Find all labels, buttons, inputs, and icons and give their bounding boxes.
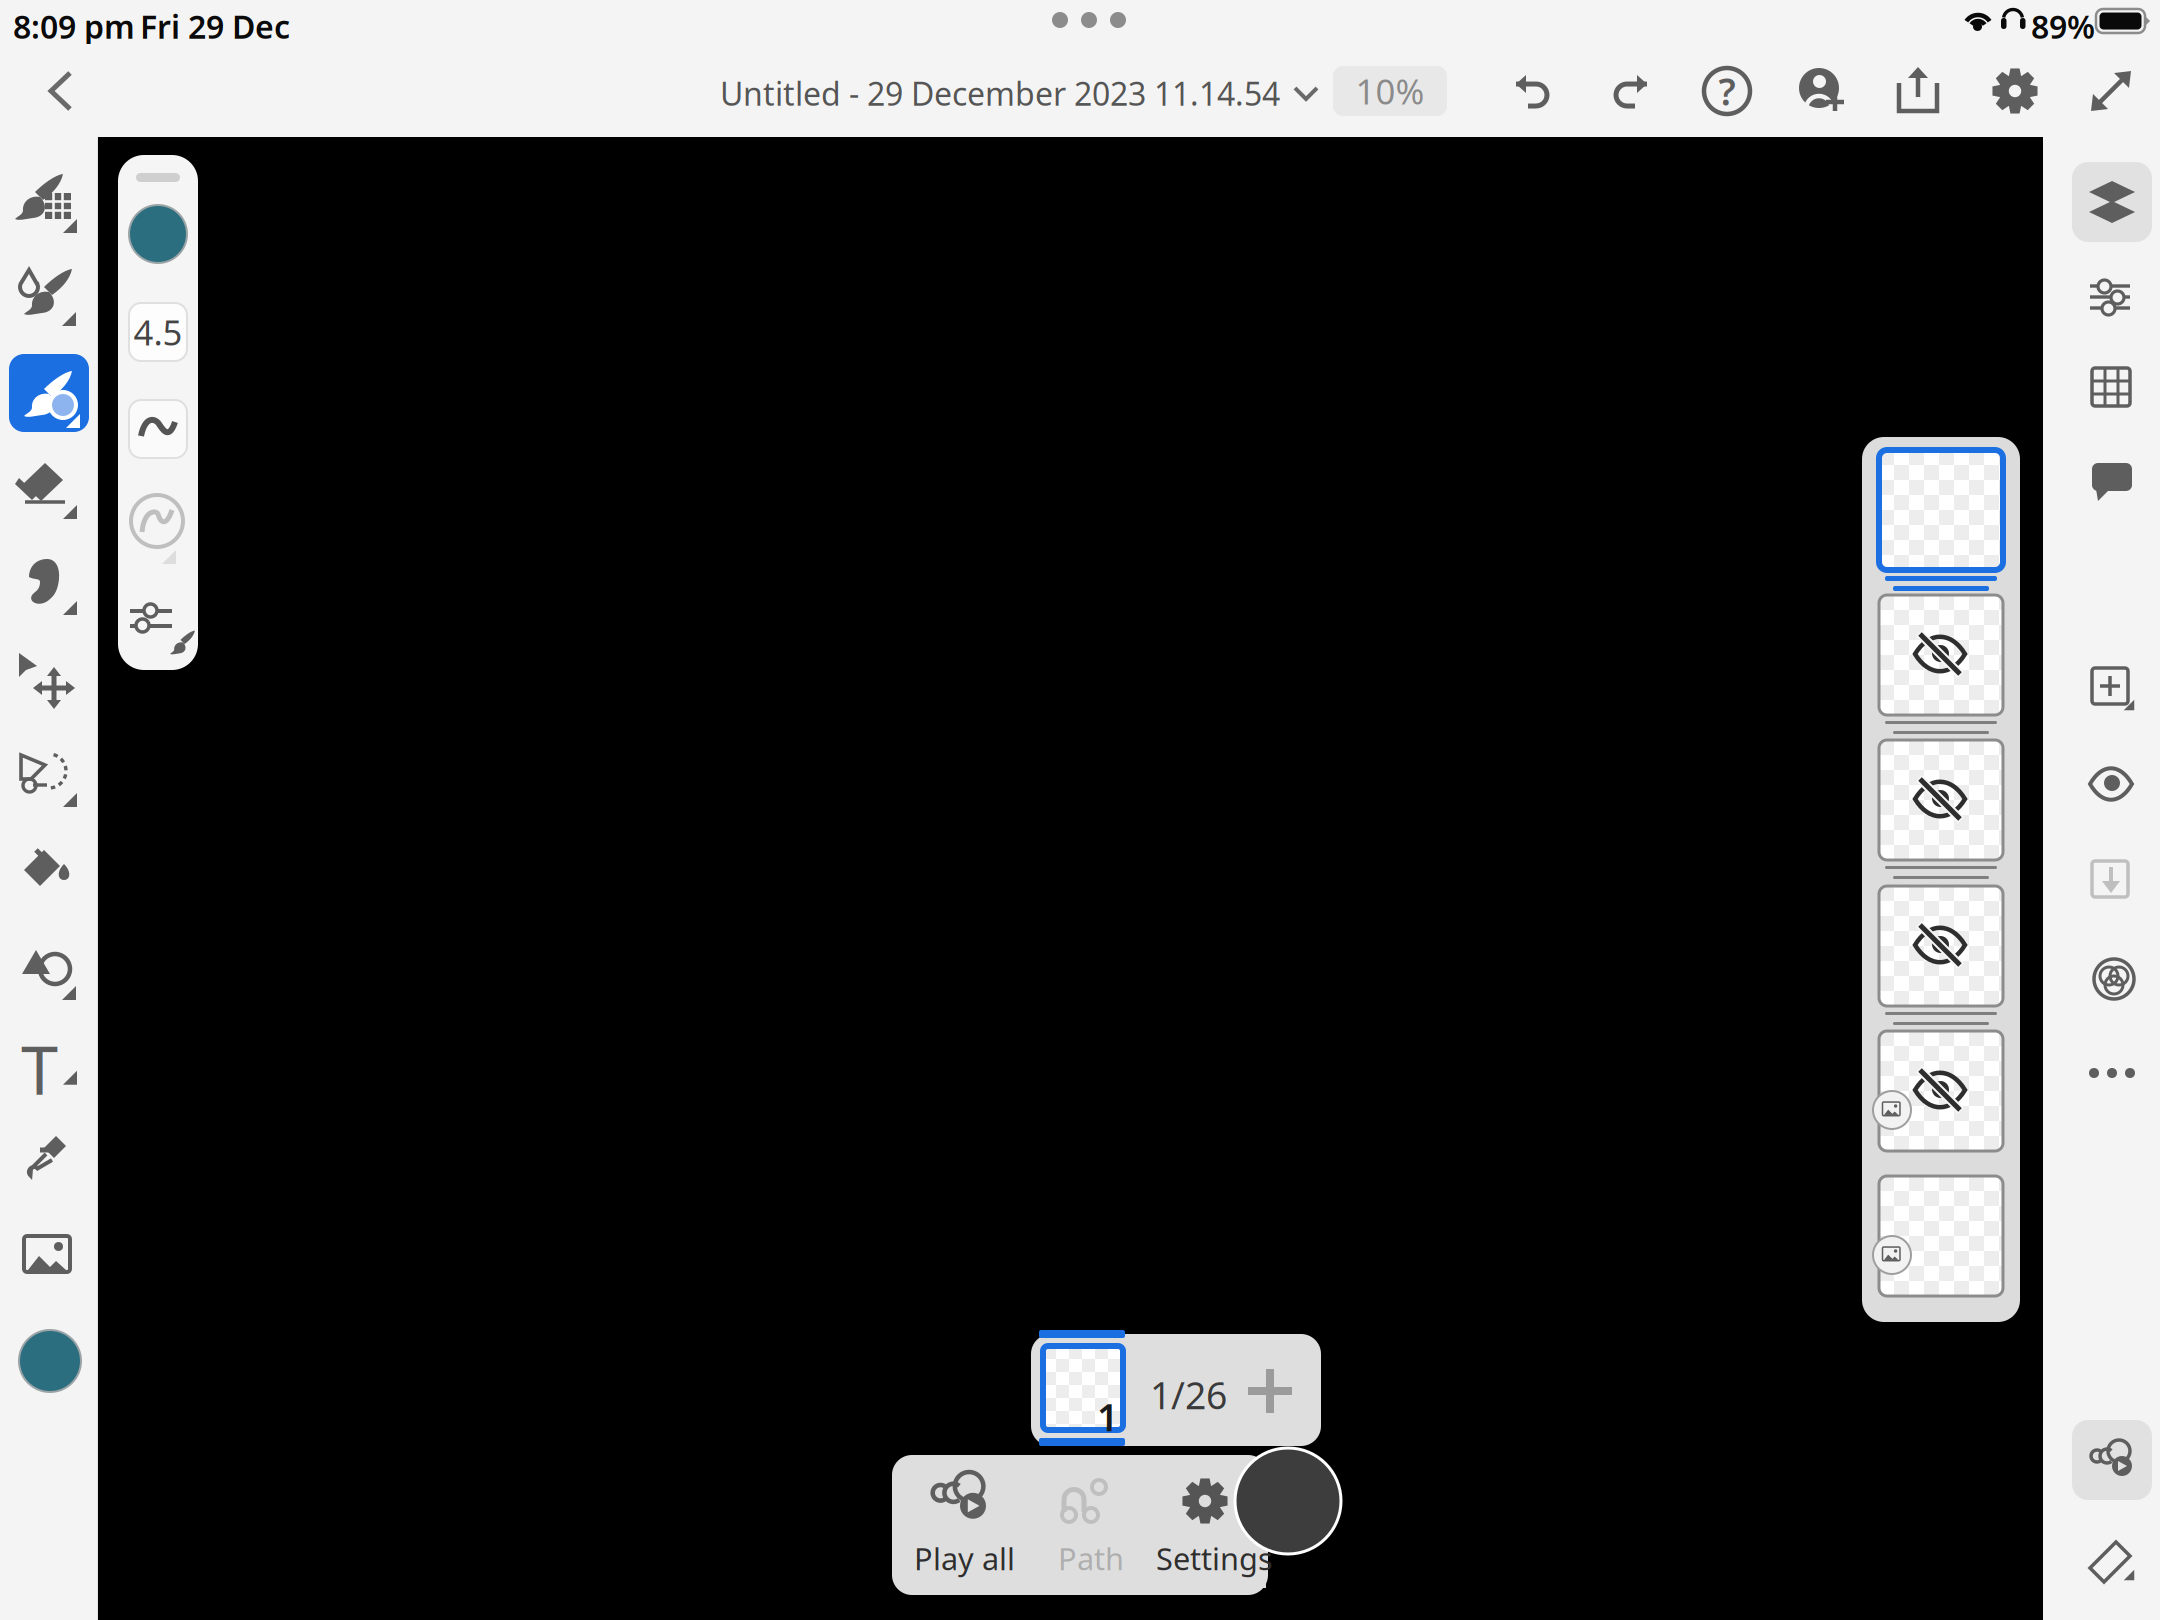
button[interactable]: Colour	[19, 1330, 81, 1392]
staticText: 8:09 pm	[13, 5, 135, 47]
button[interactable]: Ruler	[2072, 1518, 2152, 1598]
staticText: ?	[1718, 66, 1735, 116]
button[interactable]: Place image	[9, 1218, 89, 1296]
button[interactable]: Back	[28, 58, 94, 124]
staticText: 10%	[1355, 68, 1424, 114]
button[interactable]: Adjustments	[2072, 257, 2152, 337]
button[interactable]: Share	[1886, 60, 1952, 122]
button[interactable]: Layer	[1877, 1031, 2005, 1174]
button[interactable]: Pixel brush	[9, 166, 89, 244]
staticText: Play all	[914, 1538, 1015, 1579]
button[interactable]: Settings	[1982, 60, 2048, 122]
button[interactable]: Redo	[1597, 60, 1663, 122]
button[interactable]: Frame 1	[1043, 1346, 1123, 1430]
button[interactable]: Shape	[9, 932, 89, 1010]
staticText: 1	[1097, 1392, 1118, 1442]
button[interactable]: Live brush	[9, 354, 89, 432]
button[interactable]: Add frame	[1243, 1364, 1297, 1418]
button[interactable]: Smudge	[9, 548, 89, 626]
button[interactable]: Path	[1026, 1460, 1144, 1588]
staticText: Fri 29 Dec	[140, 5, 290, 47]
button[interactable]: Settings	[1144, 1460, 1266, 1588]
button[interactable]: Help	[1694, 60, 1760, 122]
staticText: Path	[1058, 1538, 1124, 1579]
staticText: Settings	[1156, 1538, 1273, 1579]
button[interactable]: Brush size 4.5	[129, 303, 187, 361]
button[interactable]: Text	[9, 1028, 89, 1106]
staticText: 1/26	[1150, 1370, 1227, 1420]
button[interactable]: Comments	[2072, 441, 2152, 521]
button[interactable]: Invite	[1790, 60, 1856, 122]
button[interactable]: Water brush	[9, 258, 89, 336]
button[interactable]: Select	[9, 740, 89, 818]
button[interactable]: Play all	[900, 1460, 1026, 1588]
button[interactable]: Blend mode	[2072, 937, 2152, 1017]
button[interactable]: Fill	[9, 836, 89, 914]
button[interactable]: Brush settings	[128, 600, 2160, 1620]
button[interactable]: Brush colour	[129, 205, 187, 263]
button[interactable]: Layer	[1877, 886, 2005, 1029]
button[interactable]: Animation	[2072, 1420, 2152, 1500]
button[interactable]: Layer	[1877, 450, 2005, 593]
staticText: 89%	[2031, 5, 2095, 47]
button[interactable]: Merge down	[2072, 841, 2152, 921]
button[interactable]: Layer	[1877, 740, 2005, 883]
button[interactable]: Layer	[1877, 1176, 2005, 1319]
staticText: 4.5	[133, 309, 182, 355]
button[interactable]: Full screen	[2078, 60, 2144, 122]
staticText: Untitled - 29 December 2023 11.14.54	[720, 72, 1280, 114]
button[interactable]: Record	[1235, 1448, 1341, 1554]
button[interactable]: Untitled - 29 December 2023 11.14.54	[720, 62, 1330, 118]
button[interactable]: Layer	[1877, 595, 2005, 738]
button[interactable]: Brush smoothing	[129, 400, 187, 458]
button[interactable]: Visibility	[2072, 745, 2152, 825]
button[interactable]: Layers	[2072, 162, 2152, 242]
button[interactable]: Grid	[2072, 348, 2152, 428]
button[interactable]: Transform	[9, 644, 89, 722]
button[interactable]: Eyedropper	[9, 1122, 89, 1200]
button[interactable]: Undo	[1500, 60, 1566, 122]
button[interactable]: Eraser	[9, 452, 89, 530]
button[interactable]: Add layer	[2072, 648, 2152, 728]
button[interactable]: More	[2072, 1033, 2152, 1113]
button[interactable]: Blend	[131, 495, 183, 547]
button[interactable]: 10%	[1333, 66, 1447, 116]
staticText: T	[21, 1025, 58, 1113]
